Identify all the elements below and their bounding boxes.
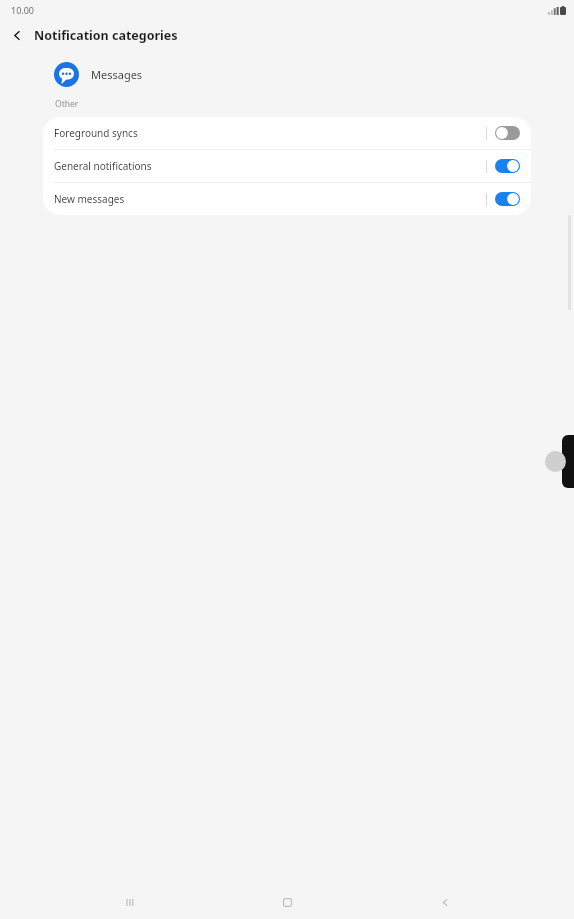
staticText: Other [55,98,79,110]
button[interactable]: On [495,159,520,173]
staticText: New messages [54,192,486,206]
button[interactable]: General notifications [43,150,531,182]
button[interactable]: Foreground syncs [43,117,531,149]
staticText: General notifications [54,159,486,173]
button[interactable]: Off [495,126,520,140]
staticText: 10.00 [11,4,35,16]
button[interactable]: Recents [100,885,158,919]
button[interactable]: On [495,192,520,206]
button[interactable]: Edge panel [562,435,574,488]
staticText: Foreground syncs [54,126,486,140]
staticText: Notification categories [34,27,178,44]
button[interactable]: Home [258,885,316,919]
button[interactable]: Back [416,885,474,919]
staticText: Messages [91,67,143,82]
button[interactable]: Back [0,20,34,50]
button[interactable]: New messages [43,183,531,215]
